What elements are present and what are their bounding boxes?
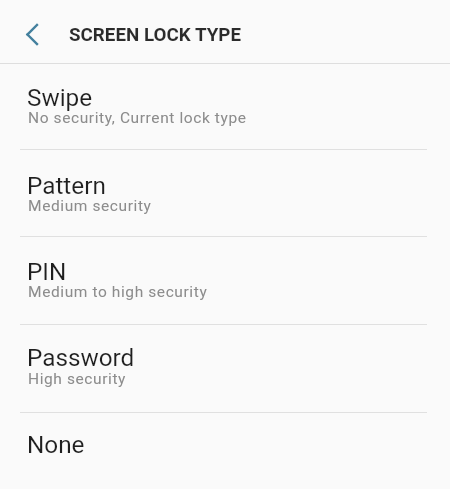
staticText: Medium security xyxy=(28,197,152,215)
staticText: High security xyxy=(28,370,127,388)
button[interactable] xyxy=(0,0,56,62)
staticText: Pattern xyxy=(27,171,106,199)
staticText: PIN xyxy=(27,257,67,285)
staticText: Medium to high security xyxy=(28,283,208,301)
button[interactable]: Swipe xyxy=(0,64,450,149)
staticText: No security, Current lock type xyxy=(28,109,247,127)
button[interactable]: Password xyxy=(0,326,450,412)
button[interactable]: PIN xyxy=(0,237,450,324)
staticText: Swipe xyxy=(27,83,93,111)
staticText: SCREEN LOCK TYPE xyxy=(69,24,242,46)
button[interactable]: None xyxy=(0,414,450,489)
staticText: None xyxy=(27,430,85,458)
button[interactable]: Pattern xyxy=(0,151,450,236)
staticText: Password xyxy=(27,343,135,371)
